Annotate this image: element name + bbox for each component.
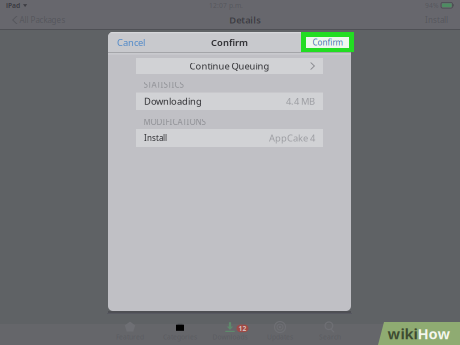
- staticText: Install: [144, 133, 167, 143]
- button[interactable]: Confirm: [306, 37, 349, 48]
- staticText: Confirm: [211, 36, 248, 49]
- button[interactable]: Confirm: [296, 32, 351, 53]
- button[interactable]: Downloading: [136, 92, 323, 110]
- staticText: STATISTICS: [143, 79, 183, 90]
- staticText: 12:07 p.m.: [209, 1, 243, 10]
- staticText: wiki: [387, 324, 417, 343]
- staticText: All Packages: [20, 15, 66, 25]
- staticText: 94%: [425, 1, 439, 10]
- staticText: How: [417, 324, 450, 343]
- staticText: Downloading: [144, 95, 202, 107]
- button[interactable]: Downloads: [205, 324, 255, 345]
- staticText: iPad: [6, 1, 20, 10]
- staticText: Confirm: [305, 36, 342, 49]
- staticText: 4.4 MB: [286, 95, 315, 107]
- staticText: Confirm: [312, 37, 342, 48]
- staticText: Install: [425, 15, 448, 25]
- button[interactable]: Categories: [155, 324, 205, 345]
- staticText: Continue Queuing: [189, 60, 269, 72]
- staticText: Details: [229, 14, 261, 26]
- button[interactable]: Cancel: [108, 32, 154, 53]
- button[interactable]: Continue Queuing: [136, 58, 323, 74]
- staticText: 12: [238, 324, 246, 333]
- staticText: AppCake 4: [269, 132, 315, 144]
- button[interactable]: Install: [418, 11, 455, 29]
- staticText: MODIFICATIONS: [143, 116, 205, 127]
- button[interactable]: All Packages: [5, 11, 73, 29]
- button[interactable]: Install: [136, 129, 323, 147]
- staticText: Cancel: [117, 36, 145, 49]
